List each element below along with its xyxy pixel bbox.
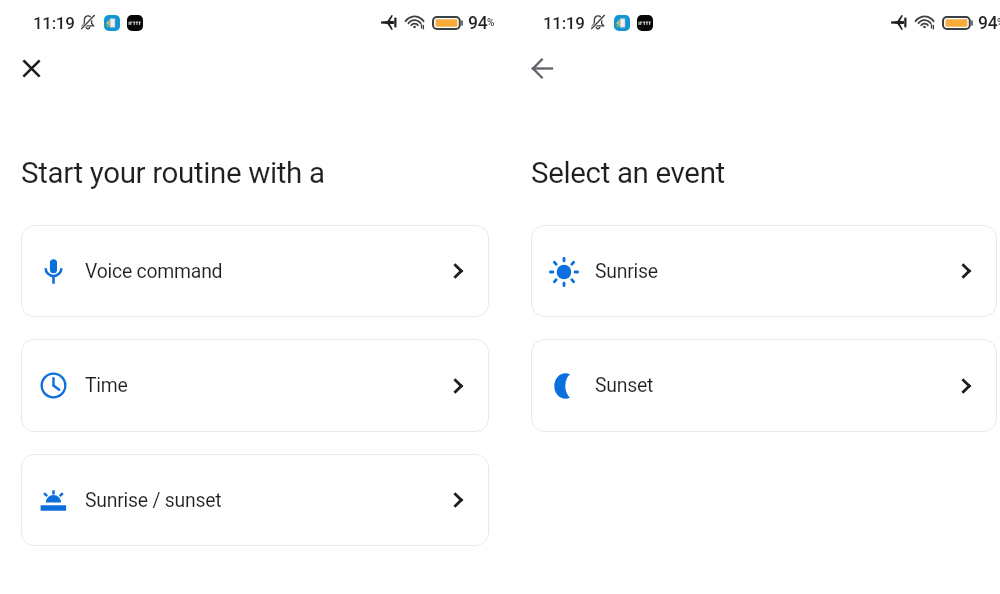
staticText: 94 — [468, 13, 488, 34]
button[interactable]: Time — [21, 339, 489, 432]
staticText: Start your routine with a — [21, 156, 325, 191]
staticText: Time — [85, 374, 128, 397]
button[interactable]: Close — [17, 54, 46, 83]
staticText: 94 — [978, 13, 998, 34]
staticText: Sunset — [595, 374, 654, 397]
staticText: 11:19 — [33, 13, 75, 33]
staticText: Voice command — [85, 260, 223, 283]
button[interactable]: Back — [527, 54, 556, 83]
button[interactable]: Voice command — [21, 225, 489, 317]
staticText: Sunrise / sunset — [85, 489, 222, 512]
staticText: % — [487, 17, 495, 29]
staticText: Select an event — [531, 156, 725, 191]
button[interactable]: Sunrise / sunset — [21, 454, 489, 546]
staticText: 11:19 — [543, 13, 585, 33]
button[interactable]: Sunset — [531, 339, 997, 432]
staticText: % — [997, 17, 1000, 29]
button[interactable]: Sunrise — [531, 225, 997, 317]
staticText: Sunrise — [595, 260, 658, 283]
